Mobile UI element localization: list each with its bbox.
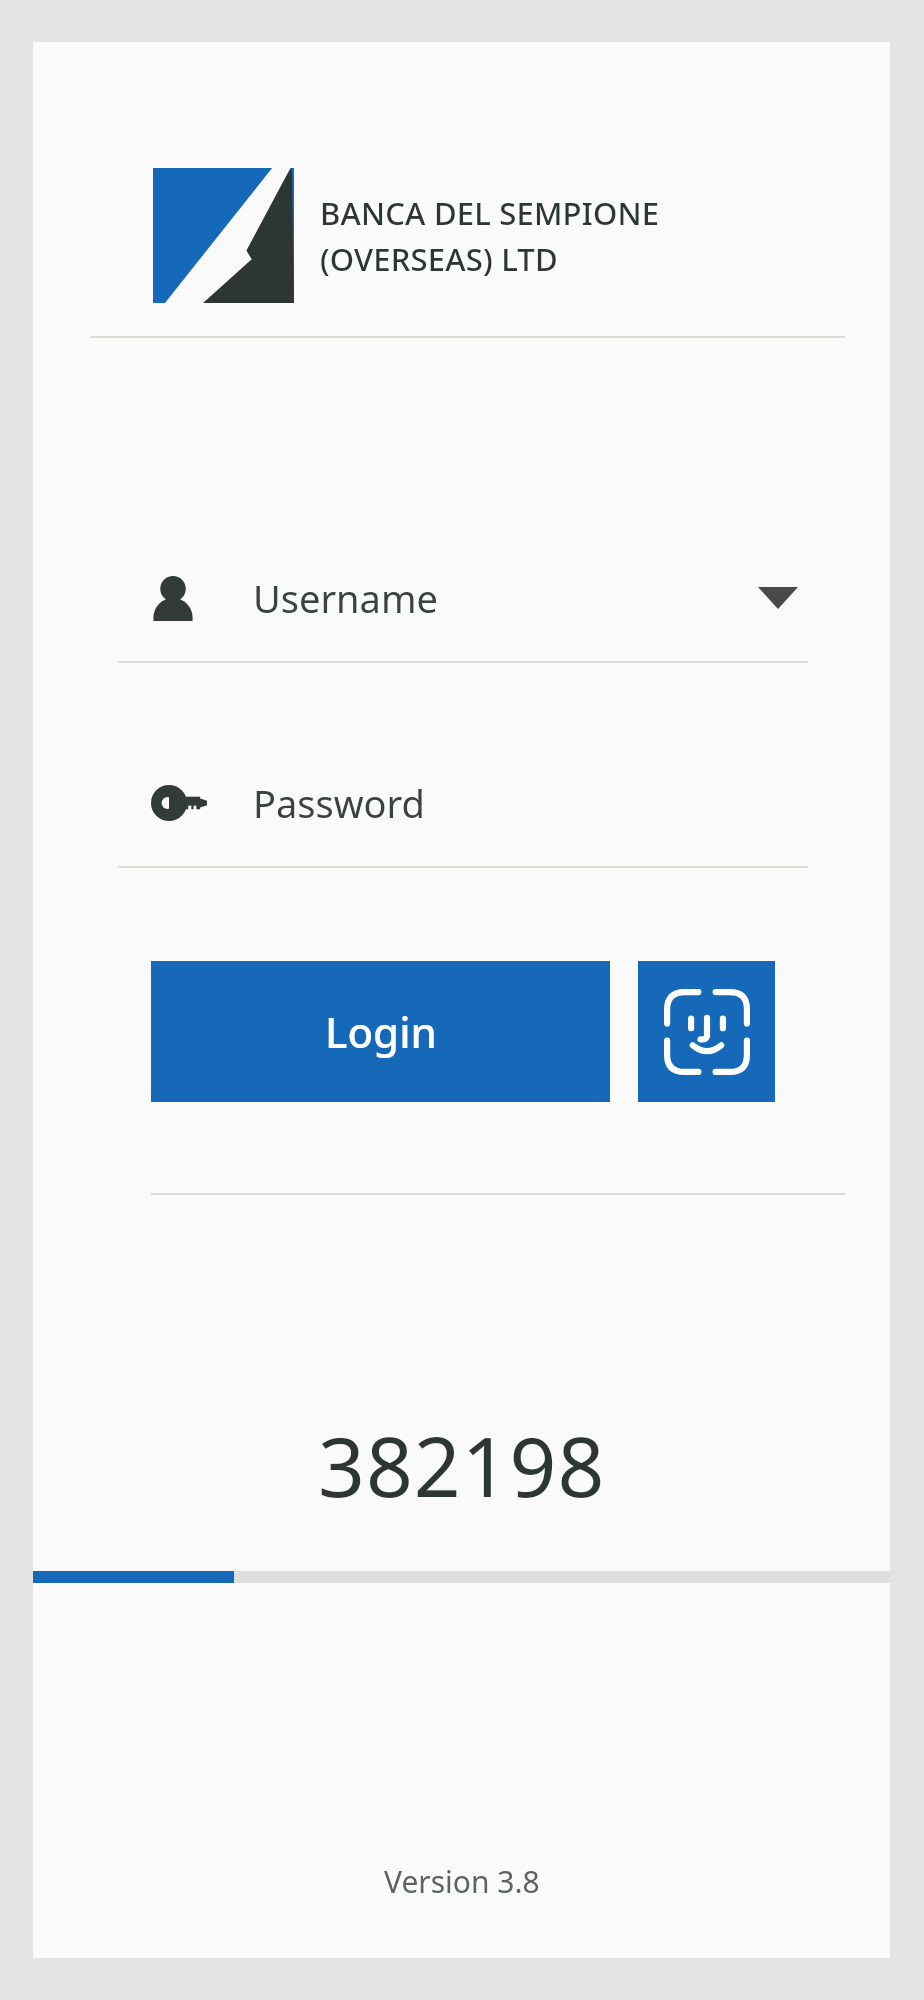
staticText: Version 3.8 — [384, 1861, 540, 1902]
button[interactable]: Password — [118, 764, 808, 868]
staticText: Username — [253, 572, 438, 624]
button[interactable]: Login with Face ID — [638, 961, 775, 1102]
staticText: BANCA DEL SEMPIONE — [320, 192, 660, 234]
staticText: (OVERSEAS) LTD — [320, 238, 558, 280]
button[interactable]: Login — [151, 961, 610, 1102]
staticText: Login — [325, 1003, 437, 1060]
staticText: Password — [253, 777, 425, 829]
staticText: 382198 — [318, 1409, 606, 1521]
button[interactable]: Show saved usernames — [748, 568, 808, 628]
button[interactable]: Username — [118, 559, 808, 663]
